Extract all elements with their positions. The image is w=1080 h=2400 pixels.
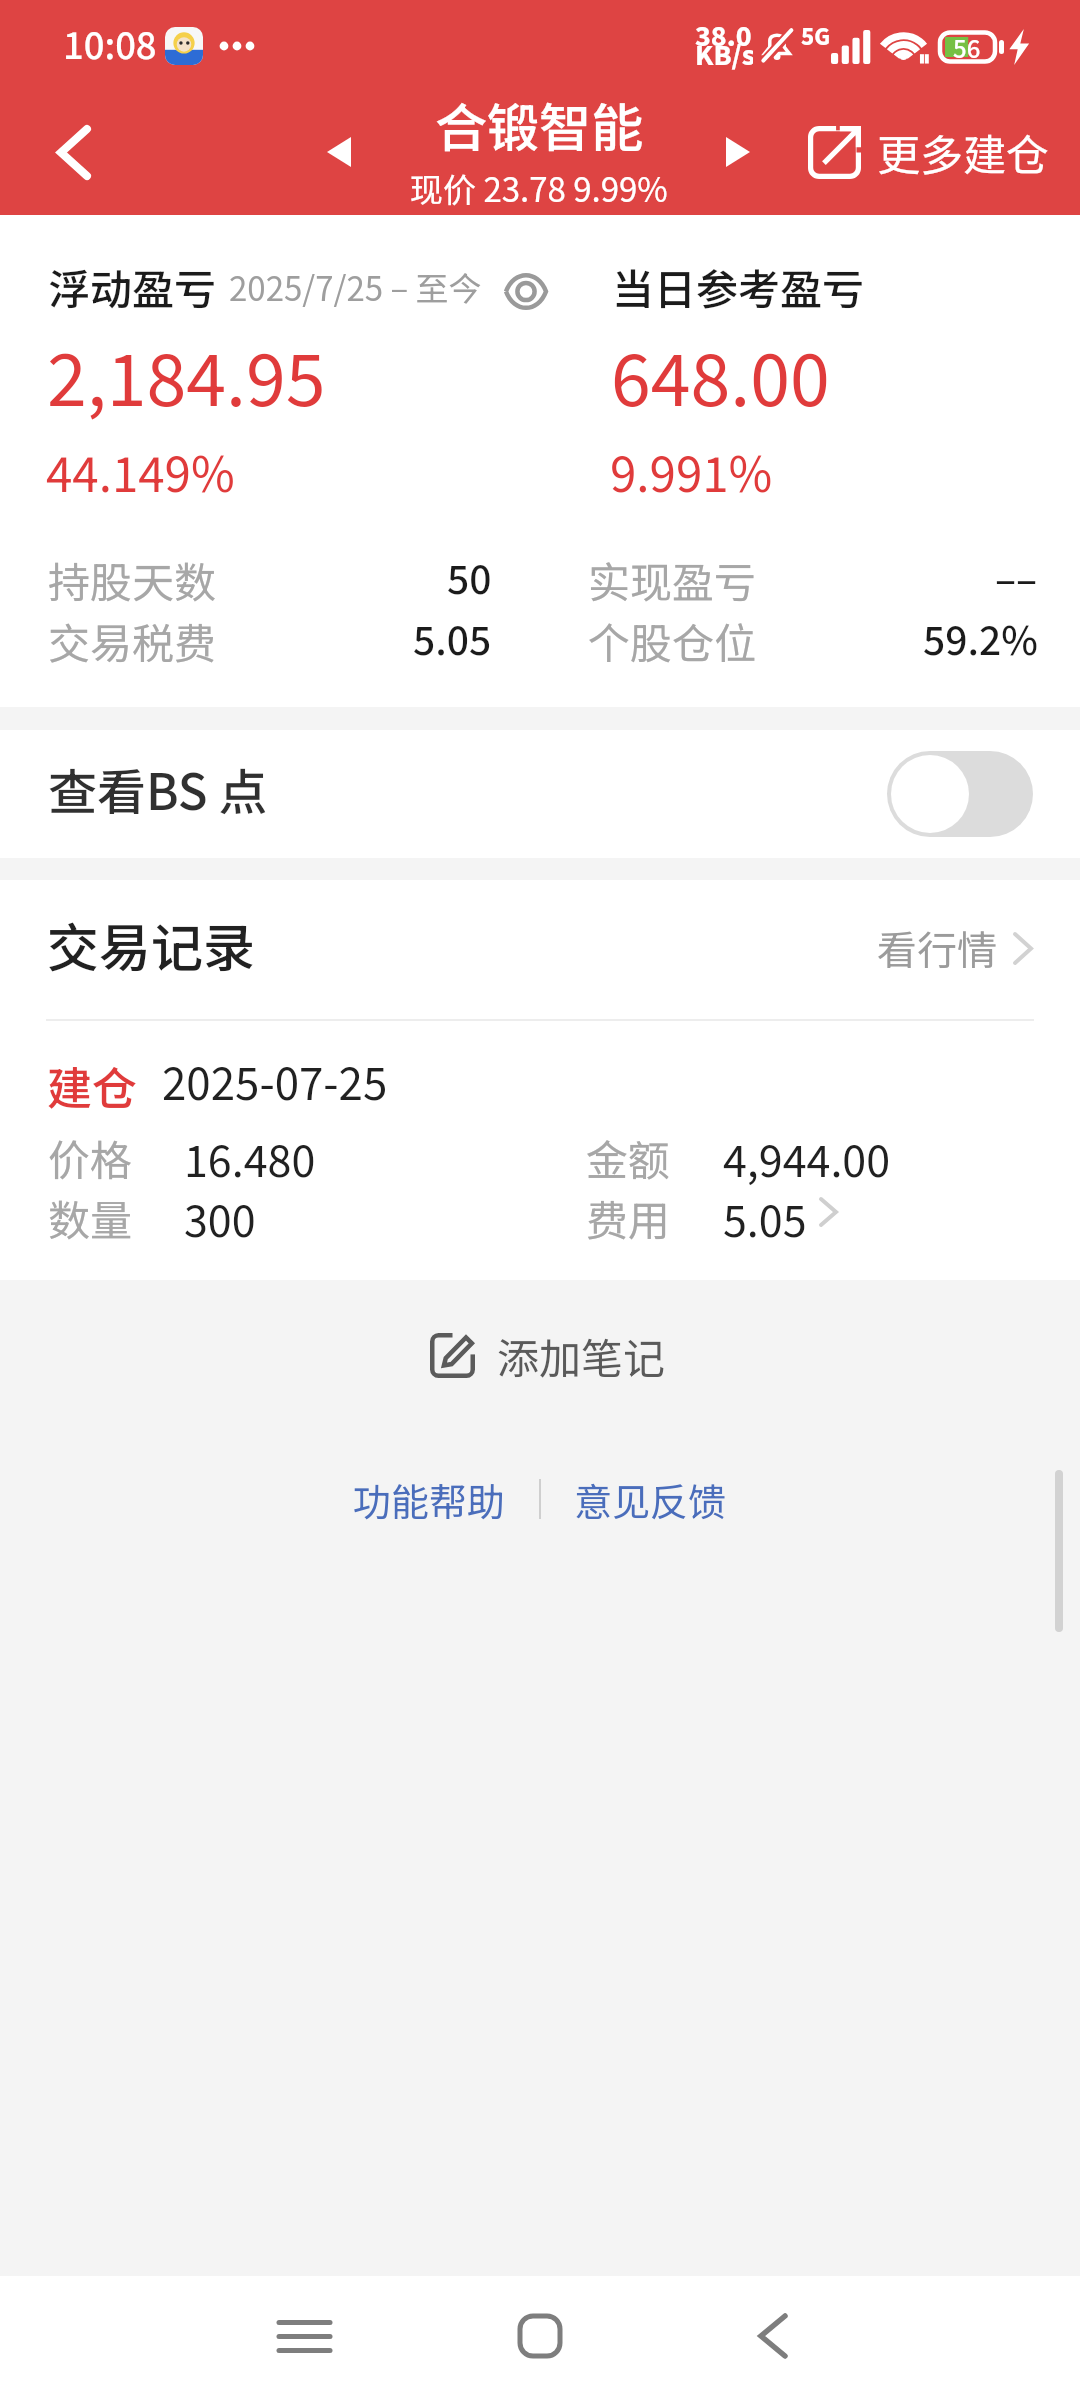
staticText: 16.480 <box>184 1128 316 1196</box>
button[interactable]: Recent apps <box>214 2276 394 2400</box>
staticText: 费用 <box>586 1187 671 1248</box>
staticText: 5G <box>801 19 831 55</box>
staticText: 44.149% <box>46 438 235 513</box>
staticText: 2,184.95 <box>47 324 326 438</box>
staticText: 功能帮助 <box>353 1472 506 1527</box>
staticText: 现价 23.78 9.99% <box>410 164 668 212</box>
staticText: 查看BS 点 <box>48 753 268 824</box>
staticText: 2025-07-25 <box>162 1050 388 1120</box>
staticText: 实现盈亏 <box>588 549 757 610</box>
staticText: 添加笔记 <box>497 1325 666 1385</box>
staticText: 56 <box>953 30 981 62</box>
staticText: 数量 <box>48 1187 133 1248</box>
button[interactable]: 建仓 <box>0 1021 1080 1280</box>
button[interactable]: Hide amounts <box>500 265 552 317</box>
staticText: 38.0 <box>695 15 752 57</box>
button[interactable]: Next stock <box>690 115 786 215</box>
staticText: 9.991% <box>610 438 773 513</box>
staticText: 交易记录 <box>47 907 256 982</box>
staticText: 持股天数 <box>48 549 217 610</box>
staticText: 当日参考盈亏 <box>612 256 865 317</box>
button[interactable]: 查看BS 点 <box>0 730 1080 858</box>
staticText: 5.05 <box>413 610 492 673</box>
button[interactable]: 更多建仓 <box>786 102 1080 202</box>
button[interactable]: 意见反馈 <box>568 1472 733 1527</box>
staticText: 更多建仓 <box>877 121 1049 183</box>
button[interactable]: Back <box>682 2276 862 2400</box>
staticText: 50 <box>447 549 492 612</box>
button[interactable]: 看行情 <box>857 908 1080 988</box>
staticText: 10:08 <box>63 17 157 75</box>
staticText: 648.00 <box>611 324 830 438</box>
button[interactable]: 功能帮助 <box>347 1472 512 1527</box>
staticText: 5.05 <box>723 1188 807 1256</box>
staticText: 300 <box>184 1188 256 1256</box>
button[interactable]: Home <box>450 2276 630 2400</box>
staticText: 合锻智能 <box>435 87 644 162</box>
staticText: 4,944.00 <box>723 1128 891 1196</box>
staticText: KB/s <box>695 34 753 76</box>
staticText: –– <box>995 549 1038 612</box>
button[interactable]: 添加笔记 <box>0 1325 1080 1385</box>
staticText: 意见反馈 <box>574 1472 727 1527</box>
staticText: 价格 <box>48 1127 133 1188</box>
staticText: 金额 <box>586 1127 671 1188</box>
staticText: 个股仓位 <box>588 610 757 671</box>
button[interactable]: Back <box>0 115 146 215</box>
staticText: 2025/7/25 – 至今 <box>229 263 482 311</box>
staticText: 浮动盈亏 <box>48 256 217 317</box>
button[interactable]: Previous stock <box>290 115 386 215</box>
staticText: 建仓 <box>47 1053 138 1118</box>
staticText: 59.2% <box>923 610 1038 673</box>
staticText: 交易税费 <box>48 610 217 671</box>
staticText: 看行情 <box>877 919 997 977</box>
